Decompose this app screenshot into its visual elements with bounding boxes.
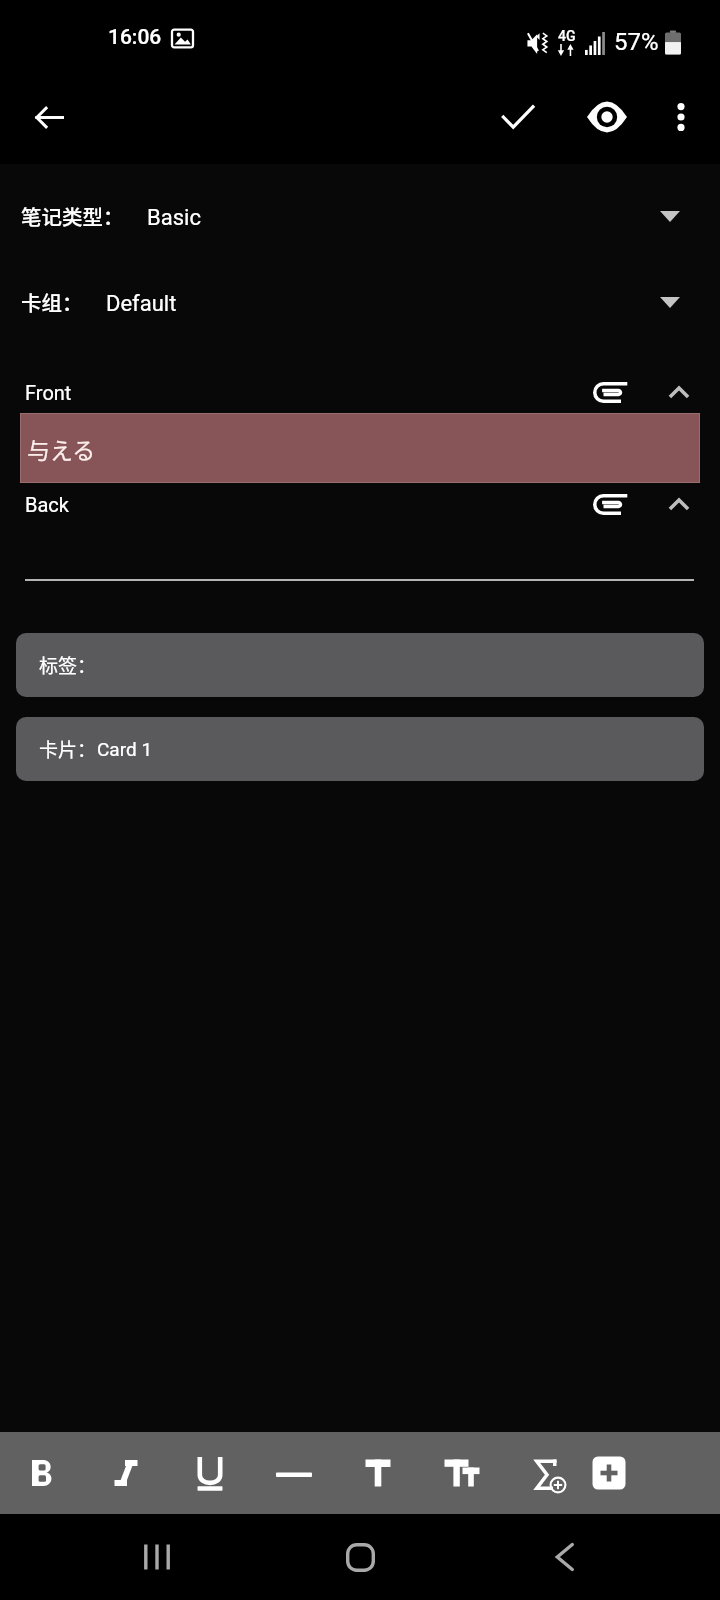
button[interactable]: 卡片： (16, 717, 704, 781)
button[interactable]: Text formatting (432, 1432, 492, 1514)
staticText: 卡片： (39, 735, 97, 763)
staticText: Back (25, 493, 69, 516)
button[interactable]: Back (530, 1524, 596, 1590)
staticText: 笔记类型： (21, 201, 124, 231)
staticText: 与える (27, 432, 96, 465)
button[interactable]: Recent apps (124, 1524, 190, 1590)
button[interactable]: Add media (587, 370, 633, 415)
staticText: 卡组： (21, 287, 83, 317)
staticText: 16:06 (108, 25, 162, 50)
button[interactable]: Home (327, 1524, 393, 1590)
button[interactable]: Font size (348, 1432, 408, 1514)
staticText: 4G (558, 28, 576, 44)
button[interactable]: Horizontal rule (264, 1432, 324, 1514)
staticText: Card 1 (97, 738, 153, 760)
staticText: Front (25, 381, 72, 404)
button[interactable]: More options (656, 92, 706, 142)
button[interactable]: Bold (12, 1432, 72, 1514)
button[interactable]: 与える (20, 413, 700, 483)
staticText: 57% (614, 28, 659, 56)
staticText: Default (106, 291, 177, 317)
button[interactable]: Underline (180, 1432, 240, 1514)
button[interactable]: 卡组： (0, 277, 720, 327)
button[interactable]: Add media (587, 482, 633, 527)
button[interactable]: Insert MathJax (516, 1432, 576, 1514)
button[interactable]: Italic (96, 1432, 156, 1514)
staticText: 标签： (39, 651, 97, 679)
staticText: Basic (147, 205, 201, 231)
button[interactable]: Collapse field (656, 482, 702, 527)
button[interactable]: Collapse field (656, 370, 702, 415)
button[interactable]: 标签： (16, 633, 704, 697)
button[interactable]: More formatting options (579, 1432, 639, 1514)
button[interactable]: Navigate up (24, 92, 74, 142)
button[interactable]: Preview (582, 92, 632, 142)
button[interactable]: 笔记类型： (0, 191, 720, 241)
button[interactable]: Save note (493, 92, 543, 142)
